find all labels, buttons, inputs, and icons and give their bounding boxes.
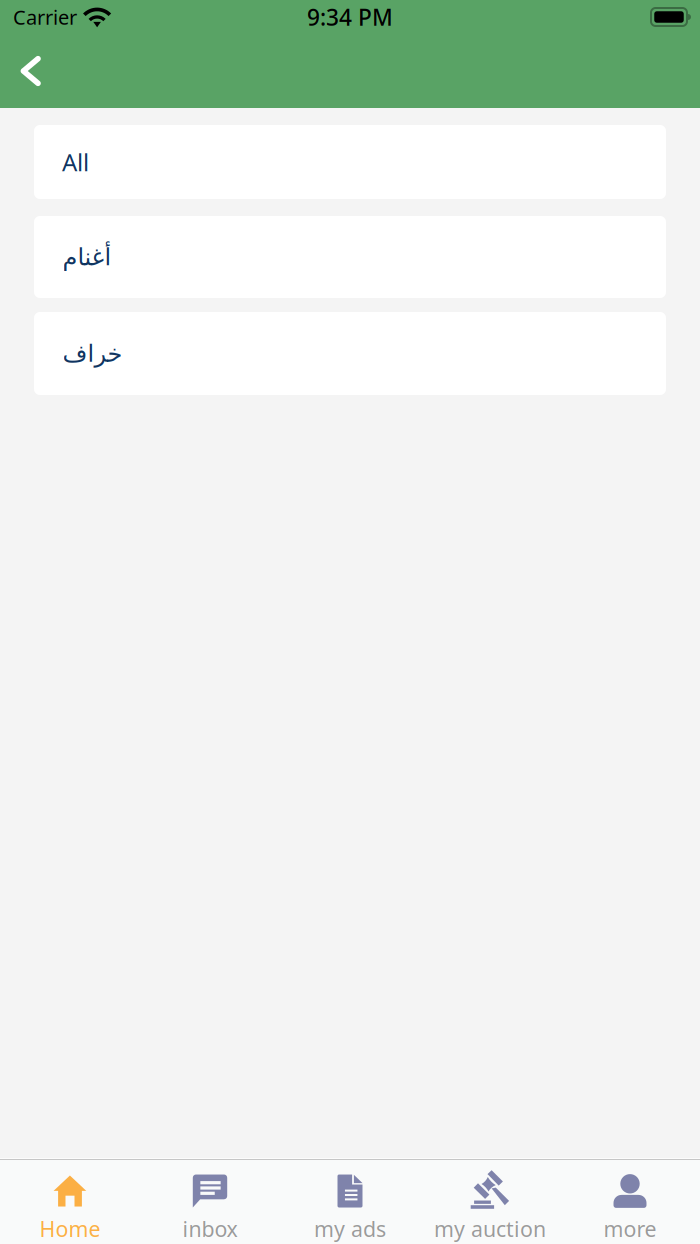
button[interactable]: inbox: [140, 1160, 280, 1244]
staticText: All: [62, 146, 89, 178]
staticText: Home: [39, 1214, 100, 1243]
staticText: my auction: [434, 1214, 546, 1243]
staticText: Carrier: [13, 4, 77, 30]
staticText: inbox: [182, 1214, 237, 1243]
button[interactable]: more: [560, 1160, 700, 1244]
staticText: خراف: [62, 340, 122, 367]
staticText: more: [603, 1214, 656, 1243]
button[interactable]: my auction: [420, 1160, 560, 1244]
button[interactable]: Back: [0, 34, 68, 108]
button[interactable]: All: [34, 125, 666, 199]
staticText: أغنام: [62, 243, 111, 271]
button[interactable]: أغنام: [34, 216, 666, 298]
button[interactable]: my ads: [280, 1160, 420, 1244]
button[interactable]: Home: [0, 1160, 140, 1244]
button[interactable]: خراف: [34, 312, 666, 395]
staticText: 9:34 PM: [307, 2, 393, 32]
staticText: my ads: [314, 1214, 386, 1243]
